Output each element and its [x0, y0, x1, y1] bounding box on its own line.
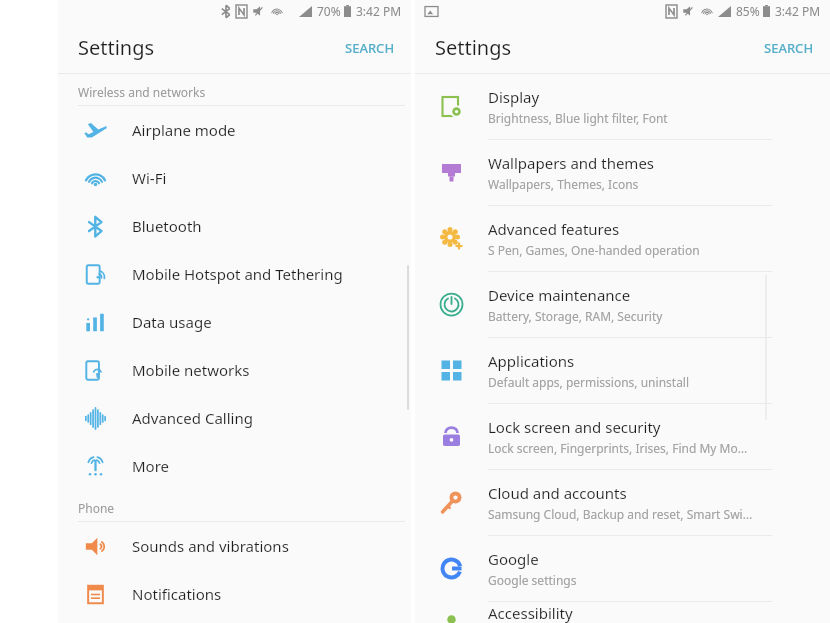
staticText: Bluetooth [132, 216, 202, 236]
staticText: Phone [78, 500, 115, 516]
staticText: S Pen, Games, One-handed operation [488, 242, 700, 258]
button[interactable]: SEARCH [748, 29, 830, 67]
staticText: Data usage [132, 312, 212, 332]
staticText: Notifications [132, 584, 222, 604]
button[interactable]: Applications [415, 338, 830, 404]
staticText: Brightness, Blue light filter, Font [488, 110, 668, 126]
staticText: Sounds and vibrations [132, 536, 289, 556]
staticText: Wi-Fi [132, 168, 167, 188]
staticText: Display [488, 87, 540, 107]
staticText: Cloud and accounts [488, 483, 627, 503]
button[interactable]: Advanced features [415, 206, 830, 272]
staticText: SEARCH [764, 39, 814, 57]
button[interactable]: Mobile networks [58, 346, 411, 394]
button[interactable]: Cloud and accounts [415, 470, 830, 536]
button[interactable]: Accessibility [415, 602, 830, 623]
button[interactable]: Bluetooth [58, 202, 411, 250]
button[interactable]: Airplane mode [58, 106, 411, 154]
staticText: Mobile Hotspot and Tethering [132, 264, 343, 284]
staticText: Wireless and networks [78, 84, 206, 100]
staticText: 85% [736, 3, 760, 19]
staticText: Advanced features [488, 219, 620, 239]
staticText: Advanced Calling [132, 408, 253, 428]
staticText: Settings [435, 34, 512, 61]
staticText: Airplane mode [132, 120, 236, 140]
button[interactable]: Wi-Fi [58, 154, 411, 202]
staticText: Lock screen, Fingerprints, Irises, Find … [488, 440, 748, 456]
staticText: Settings [78, 34, 155, 61]
button[interactable]: Sounds and vibrations [58, 522, 411, 570]
button[interactable]: Data usage [58, 298, 411, 346]
staticText: 3:42 PM [775, 3, 821, 19]
staticText: Wallpapers, Themes, Icons [488, 176, 639, 192]
button[interactable]: More [58, 442, 411, 490]
button[interactable]: SEARCH [329, 29, 411, 67]
staticText: Google settings [488, 572, 577, 588]
staticText: Google [488, 549, 539, 569]
other: Airplane mode [84, 119, 107, 142]
button[interactable]: Advanced Calling [58, 394, 411, 442]
staticText: Lock screen and security [488, 417, 661, 437]
staticText: 70% [317, 3, 341, 19]
button[interactable]: Display [415, 74, 830, 140]
button[interactable]: Lock screen and security [415, 404, 830, 470]
button[interactable]: Notifications [58, 570, 411, 618]
staticText: Wallpapers and themes [488, 153, 655, 173]
staticText: 3:42 PM [356, 3, 402, 19]
staticText: SEARCH [345, 39, 395, 57]
button[interactable]: Wallpapers and themes [415, 140, 830, 206]
button[interactable]: Device maintenance [415, 272, 830, 338]
button[interactable]: Google [415, 536, 830, 602]
staticText: Device maintenance [488, 285, 631, 305]
staticText: Default apps, permissions, uninstall [488, 374, 690, 390]
staticText: Applications [488, 351, 575, 371]
staticText: Battery, Storage, RAM, Security [488, 308, 663, 324]
staticText: More [132, 456, 170, 476]
staticText: Mobile networks [132, 360, 250, 380]
staticText: Accessibility [488, 603, 573, 623]
button[interactable]: Mobile Hotspot and Tethering [58, 250, 411, 298]
staticText: Samsung Cloud, Backup and reset, Smart S… [488, 506, 753, 522]
